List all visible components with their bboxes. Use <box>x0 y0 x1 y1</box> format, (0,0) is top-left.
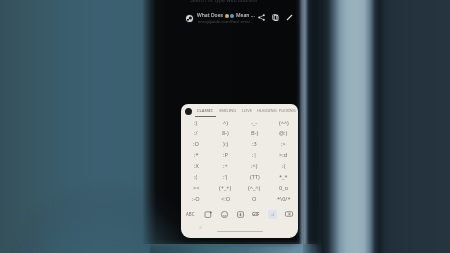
staticText: Mean ... <box>236 12 255 19</box>
staticText: (TT) <box>250 173 260 181</box>
staticText: O <box>252 195 257 203</box>
staticText: >:d <box>279 151 288 159</box>
button[interactable]: Edit <box>284 12 295 23</box>
staticText: :-O <box>192 195 200 203</box>
staticText: SMILING <box>219 108 237 114</box>
button[interactable]: ABC <box>181 204 200 224</box>
button[interactable]: Copy <box>270 12 281 23</box>
staticText: :* <box>194 151 199 159</box>
staticText: What Does <box>197 12 223 19</box>
button[interactable]: O <box>240 193 269 204</box>
staticText: :-) <box>271 212 275 217</box>
button[interactable]: SMILING <box>217 104 239 118</box>
button[interactable]: :( <box>181 171 211 182</box>
staticText: <:O <box>221 195 231 203</box>
staticText: *_* <box>279 173 288 181</box>
staticText: -_- <box>251 119 258 127</box>
button[interactable]: >< <box>181 182 211 193</box>
button[interactable]: }:) <box>211 138 240 149</box>
button[interactable]: What Does <box>181 9 298 27</box>
staticText: :| <box>252 151 257 159</box>
staticText: :( <box>194 173 198 181</box>
staticText: :X <box>194 162 199 170</box>
button[interactable]: Emoticons <box>264 204 280 224</box>
staticText: *\0/* <box>277 195 291 203</box>
button[interactable]: Download <box>232 204 248 224</box>
staticText: CLASSIC <box>197 108 214 114</box>
button[interactable]: 8-) <box>211 128 240 138</box>
button[interactable]: :'( <box>211 171 240 182</box>
staticText: (^_^) <box>248 184 261 192</box>
staticText: :/ <box>194 129 198 137</box>
button[interactable]: 0_o <box>269 182 298 193</box>
button[interactable]: <:O <box>211 193 240 204</box>
staticText: @:) <box>279 129 288 137</box>
button[interactable]: :-O <box>181 193 211 204</box>
button[interactable]: Emoji <box>216 204 232 224</box>
button[interactable]: :+ <box>211 160 240 171</box>
staticText: :+ <box>223 162 228 170</box>
staticText: :> <box>281 140 286 148</box>
button[interactable]: :3 <box>240 138 269 149</box>
staticText: HUGGING <box>257 108 277 114</box>
staticText: :{ <box>282 162 286 170</box>
staticText: :P <box>223 151 228 159</box>
staticText: (^^) <box>279 119 289 127</box>
button[interactable]: CLASSIC <box>194 104 216 118</box>
button[interactable]: >:d <box>269 149 298 160</box>
button[interactable]: FLEXING <box>276 104 298 118</box>
button[interactable]: :O <box>181 138 211 149</box>
staticText: ABC <box>186 211 195 217</box>
staticText: emojiguide.com/face-emo... <box>198 19 253 25</box>
button[interactable]: LOVE <box>236 104 258 118</box>
staticText: :^) <box>251 162 258 170</box>
staticText: :O <box>193 140 199 148</box>
staticText: :) <box>194 119 198 127</box>
button[interactable]: ^) <box>211 118 240 128</box>
button[interactable]: B-) <box>240 128 269 138</box>
button[interactable]: (^_^) <box>240 182 269 193</box>
staticText: FLEXING <box>279 108 296 114</box>
button[interactable]: Backspace <box>280 204 298 224</box>
button[interactable]: *\0/* <box>269 193 298 204</box>
button[interactable]: :| <box>240 149 269 160</box>
staticText: }:) <box>223 140 229 148</box>
staticText: B-) <box>251 129 259 137</box>
button[interactable]: Share <box>256 12 267 23</box>
staticText: GIF <box>252 211 260 217</box>
button[interactable]: :^) <box>240 160 269 171</box>
button[interactable]: -_- <box>240 118 269 128</box>
button[interactable]: (^^) <box>269 118 298 128</box>
button[interactable]: @:) <box>269 128 298 138</box>
button[interactable]: Stickers <box>200 204 216 224</box>
staticText: 0_o <box>279 184 289 192</box>
staticText: Search or type web address <box>190 0 258 3</box>
staticText: :'( <box>223 173 228 181</box>
staticText: (+_+) <box>219 184 232 192</box>
staticText: :3 <box>252 140 257 148</box>
staticText: LOVE <box>242 108 253 114</box>
button[interactable]: Recently used <box>185 108 192 115</box>
staticText: ^) <box>223 119 228 127</box>
button[interactable]: GIF <box>248 204 264 224</box>
button[interactable]: :> <box>269 138 298 149</box>
button[interactable]: :X <box>181 160 211 171</box>
button[interactable]: *_* <box>269 171 298 182</box>
button[interactable]: :{ <box>269 160 298 171</box>
staticText: >< <box>193 184 200 192</box>
button[interactable]: :/ <box>181 128 211 138</box>
button[interactable]: (+_+) <box>211 182 240 193</box>
button[interactable]: :* <box>181 149 211 160</box>
staticText: 8-) <box>222 129 229 137</box>
button[interactable]: :P <box>211 149 240 160</box>
button[interactable]: :) <box>181 118 211 128</box>
button[interactable]: (TT) <box>240 171 269 182</box>
button[interactable]: HUGGING <box>256 104 278 118</box>
